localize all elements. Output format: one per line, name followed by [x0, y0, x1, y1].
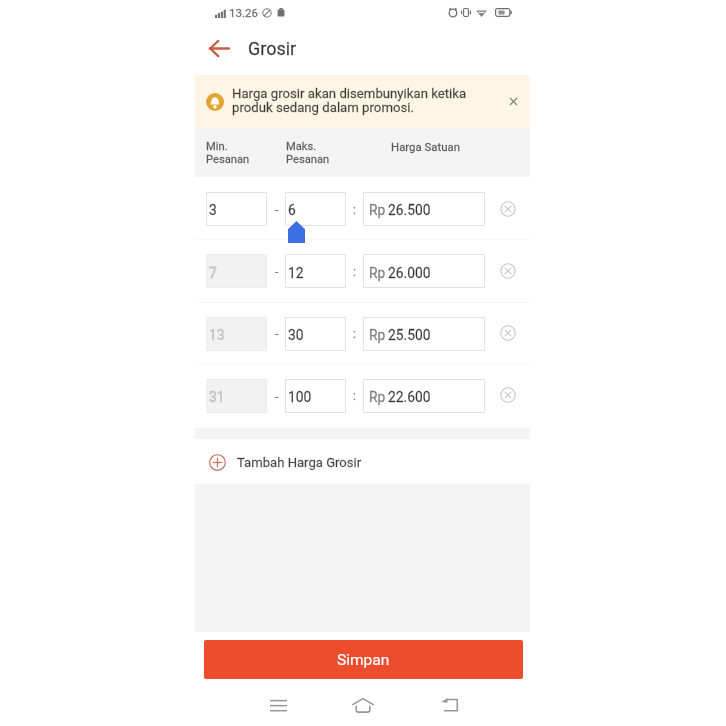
button[interactable]: Tambah Harga Grosir: [195, 440, 530, 485]
button[interactable]: Simpan: [204, 640, 523, 679]
button[interactable]: Remove tier: [496, 321, 520, 345]
staticText: 100: [288, 389, 312, 405]
staticText: Harga grosir akan disembunyikan ketika p…: [232, 86, 467, 115]
staticText: :: [353, 389, 356, 403]
staticText: Rp: [369, 327, 386, 343]
button[interactable]: Home: [346, 689, 380, 723]
button[interactable]: Harga Satuan Rp 22.600: [363, 379, 485, 413]
staticText: Rp: [369, 327, 386, 343]
staticText: -: [275, 203, 279, 217]
staticText: 30: [288, 327, 304, 343]
staticText: Min. Pesanan: [206, 140, 250, 165]
button[interactable]: Maks. Pesanan 12: [285, 254, 346, 288]
staticText: Rp: [369, 265, 386, 281]
staticText: 22.600: [388, 389, 431, 405]
staticText: 26.500: [388, 202, 431, 218]
staticText: :: [353, 265, 356, 279]
staticText: -: [275, 265, 279, 279]
staticText: Grosir: [248, 38, 297, 59]
button[interactable]: Harga Satuan Rp 26.000: [363, 254, 485, 288]
staticText: :: [353, 327, 356, 341]
button[interactable]: Close: [502, 90, 524, 112]
staticText: 7: [209, 265, 217, 281]
staticText: 26.000: [388, 265, 431, 281]
staticText: 13.26: [229, 6, 258, 19]
staticText: 26.000: [388, 265, 431, 281]
staticText: Harga grosir akan disembunyikan ketika p…: [232, 86, 467, 115]
staticText: -: [275, 327, 279, 341]
staticText: 13: [209, 327, 225, 343]
staticText: Rp: [369, 389, 386, 405]
button[interactable]: Back: [433, 689, 467, 723]
staticText: 12: [288, 265, 304, 281]
staticText: 3: [209, 202, 217, 218]
staticText: -: [275, 390, 279, 404]
button[interactable]: Harga Satuan Rp 26.500: [363, 192, 485, 226]
staticText: :: [353, 203, 356, 217]
staticText: 25.500: [388, 327, 431, 343]
staticText: 13.26: [229, 6, 258, 19]
staticText: -: [275, 327, 279, 341]
button[interactable]: Maks. Pesanan 30: [285, 317, 346, 351]
staticText: Rp: [369, 202, 386, 218]
staticText: Rp: [369, 265, 386, 281]
button[interactable]: Maks. Pesanan 6: [285, 192, 346, 226]
staticText: 25.500: [388, 327, 431, 343]
button[interactable]: Min. Pesanan 31: [206, 379, 267, 413]
staticText: 7: [209, 265, 217, 281]
button[interactable]: Remove tier: [496, 197, 520, 221]
staticText: -: [275, 390, 279, 404]
staticText: :: [353, 203, 356, 217]
staticText: -: [275, 265, 279, 279]
button[interactable]: Recent apps: [261, 689, 295, 723]
staticText: 3: [209, 202, 217, 218]
staticText: 31: [209, 389, 225, 405]
staticText: Harga Satuan: [391, 140, 460, 153]
staticText: 22.600: [388, 389, 431, 405]
staticText: Tambah Harga Grosir: [237, 455, 362, 470]
staticText: :: [353, 389, 356, 403]
staticText: Grosir: [248, 38, 297, 59]
button[interactable]: Min. Pesanan 3: [206, 192, 267, 226]
staticText: Maks. Pesanan: [286, 140, 330, 165]
staticText: Tambah Harga Grosir: [237, 455, 362, 470]
button[interactable]: Maks. Pesanan 100: [285, 379, 346, 413]
staticText: 6: [288, 202, 296, 218]
button[interactable]: Min. Pesanan 7: [206, 254, 267, 288]
staticText: Maks. Pesanan: [286, 140, 330, 165]
staticText: :: [353, 327, 356, 341]
button[interactable]: Min. Pesanan 13: [206, 317, 267, 351]
staticText: 26.500: [388, 202, 431, 218]
staticText: Harga Satuan: [391, 140, 460, 153]
staticText: Min. Pesanan: [206, 140, 250, 165]
staticText: 6: [288, 202, 296, 218]
staticText: 12: [288, 265, 304, 281]
button[interactable]: Remove tier: [496, 383, 520, 407]
staticText: 100: [288, 389, 312, 405]
staticText: 30: [288, 327, 304, 343]
staticText: Rp: [369, 202, 386, 218]
staticText: Rp: [369, 389, 386, 405]
button[interactable]: Back: [199, 28, 239, 68]
staticText: :: [353, 265, 356, 279]
staticText: Simpan: [337, 651, 390, 669]
staticText: 13: [209, 327, 225, 343]
button[interactable]: Remove tier: [496, 259, 520, 283]
staticText: 31: [209, 389, 225, 405]
staticText: -: [275, 203, 279, 217]
button[interactable]: Harga Satuan Rp 25.500: [363, 317, 485, 351]
